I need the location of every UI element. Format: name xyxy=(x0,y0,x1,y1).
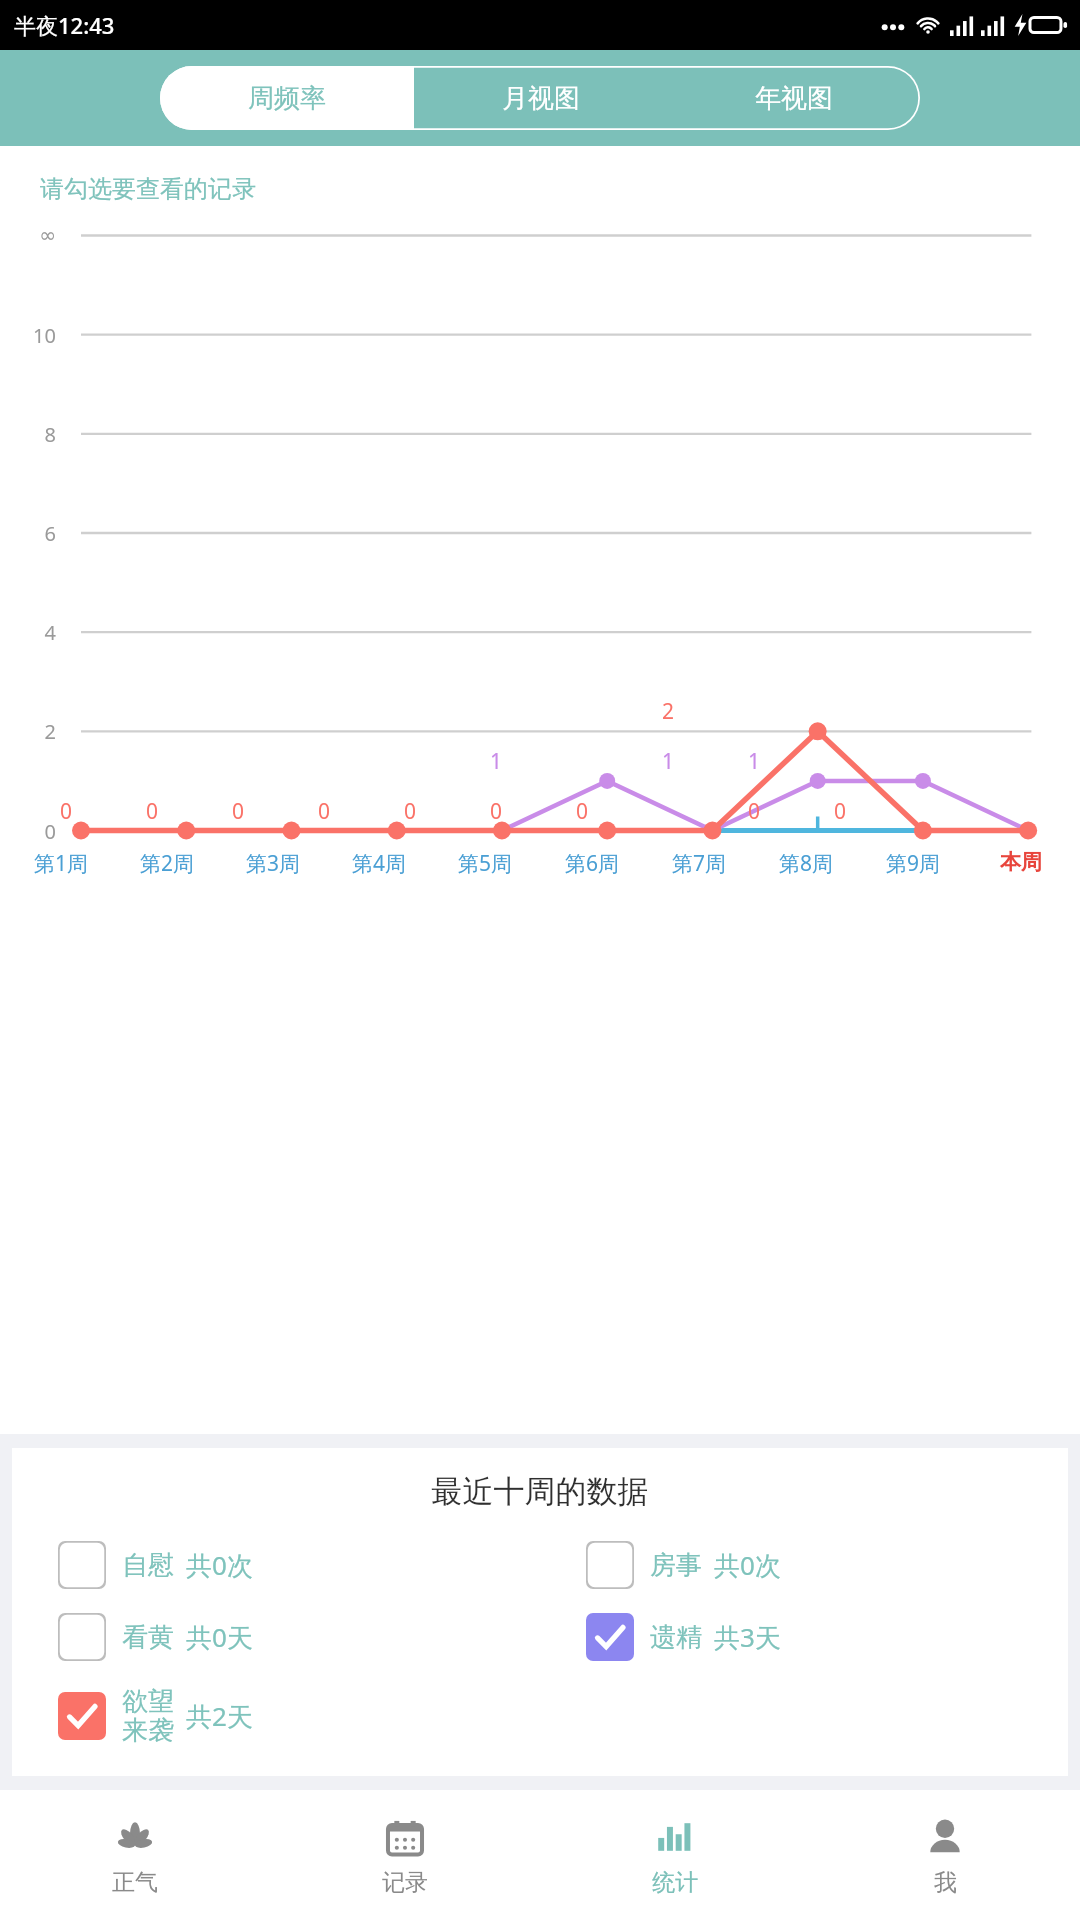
staticText: ∞ xyxy=(14,223,56,246)
staticText: 本周 xyxy=(1000,849,1042,875)
staticText: 2 xyxy=(14,718,56,745)
staticText: 0 xyxy=(740,797,768,826)
button[interactable]: 欲望 来袭 xyxy=(58,1685,540,1746)
staticText: 第9周 xyxy=(886,849,941,878)
staticText: 6 xyxy=(14,520,56,547)
button[interactable]: 正气 xyxy=(0,1790,270,1920)
staticText: 最近十周的数据 xyxy=(12,1472,1068,1511)
staticText: 我 xyxy=(934,1868,957,1897)
staticText: 遗精 xyxy=(650,1621,702,1654)
staticText: 共2天 xyxy=(186,1698,253,1734)
button[interactable]: 年视图 xyxy=(667,66,920,130)
staticText: 欲望 来袭 xyxy=(122,1685,174,1746)
staticText: 第4周 xyxy=(352,849,407,878)
button[interactable]: 统计 xyxy=(540,1790,810,1920)
staticText: 周频率 xyxy=(248,82,326,115)
button[interactable]: 自慰 xyxy=(58,1541,540,1589)
staticText: 第5周 xyxy=(458,849,513,878)
staticText: 1 xyxy=(654,747,682,776)
staticText: 0 xyxy=(568,797,596,826)
staticText: 0 xyxy=(310,797,338,826)
staticText: 月视图 xyxy=(502,82,580,115)
staticText: 1 xyxy=(482,747,510,776)
button[interactable]: 记录 xyxy=(270,1790,540,1920)
button[interactable]: 我 xyxy=(810,1790,1080,1920)
staticText: 房事 xyxy=(650,1549,702,1582)
staticText: 请勾选要查看的记录 xyxy=(40,174,256,204)
button[interactable]: 房事 xyxy=(586,1541,1068,1589)
staticText: 0 xyxy=(14,818,56,845)
button[interactable]: 遗精 xyxy=(586,1613,1068,1661)
staticText: 正气 xyxy=(112,1868,158,1897)
staticText: 第1周 xyxy=(34,849,89,878)
button[interactable]: 周频率 xyxy=(160,66,414,130)
staticText: 共0天 xyxy=(186,1619,253,1655)
staticText: 第3周 xyxy=(246,849,301,878)
staticText: 记录 xyxy=(382,1868,428,1897)
staticText: 0 xyxy=(396,797,424,826)
staticText: 4 xyxy=(14,619,56,646)
staticText: 0 xyxy=(224,797,252,826)
staticText: 10 xyxy=(14,322,56,349)
staticText: 看黄 xyxy=(122,1621,174,1654)
staticText: 第2周 xyxy=(140,849,195,878)
staticText: 0 xyxy=(52,797,80,826)
button[interactable]: 看黄 xyxy=(58,1613,540,1661)
staticText: 半夜12:43 xyxy=(14,10,115,40)
staticText: 共0次 xyxy=(714,1547,781,1583)
staticText: 0 xyxy=(826,797,854,826)
staticText: 2 xyxy=(654,697,682,726)
staticText: 1 xyxy=(740,747,768,776)
button[interactable]: 月视图 xyxy=(414,66,667,130)
staticText: 共3天 xyxy=(714,1619,781,1655)
staticText: 8 xyxy=(14,421,56,448)
staticText: 0 xyxy=(138,797,166,826)
staticText: 自慰 xyxy=(122,1549,174,1582)
staticText: 第7周 xyxy=(672,849,727,878)
staticText: 年视图 xyxy=(755,82,833,115)
staticText: 第8周 xyxy=(779,849,834,878)
staticText: 统计 xyxy=(652,1868,698,1897)
staticText: 第6周 xyxy=(565,849,620,878)
staticText: 0 xyxy=(482,797,510,826)
staticText: 共0次 xyxy=(186,1547,253,1583)
